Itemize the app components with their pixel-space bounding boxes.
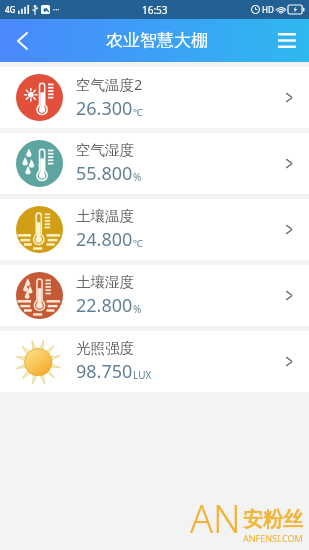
staticText: 土壤温度 bbox=[76, 207, 134, 225]
button[interactable]: 土壤温度 bbox=[0, 199, 309, 260]
staticText: HD bbox=[262, 4, 274, 15]
staticText: 空气湿度 bbox=[76, 141, 134, 159]
staticText: 24.800 bbox=[76, 227, 133, 252]
staticText: 光照强度 bbox=[76, 339, 134, 357]
staticText: 4G bbox=[5, 4, 16, 15]
staticText: ··· bbox=[53, 4, 60, 15]
staticText: 土壤湿度 bbox=[76, 273, 134, 291]
staticText: 农业智慧大棚 bbox=[106, 30, 208, 51]
button[interactable]: Back bbox=[0, 19, 44, 62]
staticText: LUX bbox=[133, 368, 152, 382]
staticText: 26.300 bbox=[76, 96, 133, 121]
button[interactable]: 空气温度2 bbox=[0, 67, 309, 128]
button[interactable]: 空气湿度 bbox=[0, 133, 309, 194]
staticText: 98.750 bbox=[76, 359, 133, 384]
staticText: ℃ bbox=[133, 105, 143, 119]
button[interactable]: 光照强度 bbox=[0, 331, 309, 392]
staticText: ℃ bbox=[133, 236, 143, 250]
button[interactable]: Menu bbox=[265, 19, 309, 62]
staticText: 16:53 bbox=[142, 3, 168, 17]
staticText: ANFENSI.COM bbox=[243, 532, 303, 544]
staticText: 55.800 bbox=[76, 161, 133, 186]
staticText: 空气温度2 bbox=[76, 74, 143, 94]
staticText: % bbox=[133, 170, 142, 184]
staticText: 安粉丝 bbox=[243, 507, 303, 532]
staticText: 22.800 bbox=[76, 293, 133, 318]
staticText: % bbox=[133, 302, 142, 316]
button[interactable]: 土壤湿度 bbox=[0, 265, 309, 326]
staticText: AN bbox=[190, 492, 241, 544]
